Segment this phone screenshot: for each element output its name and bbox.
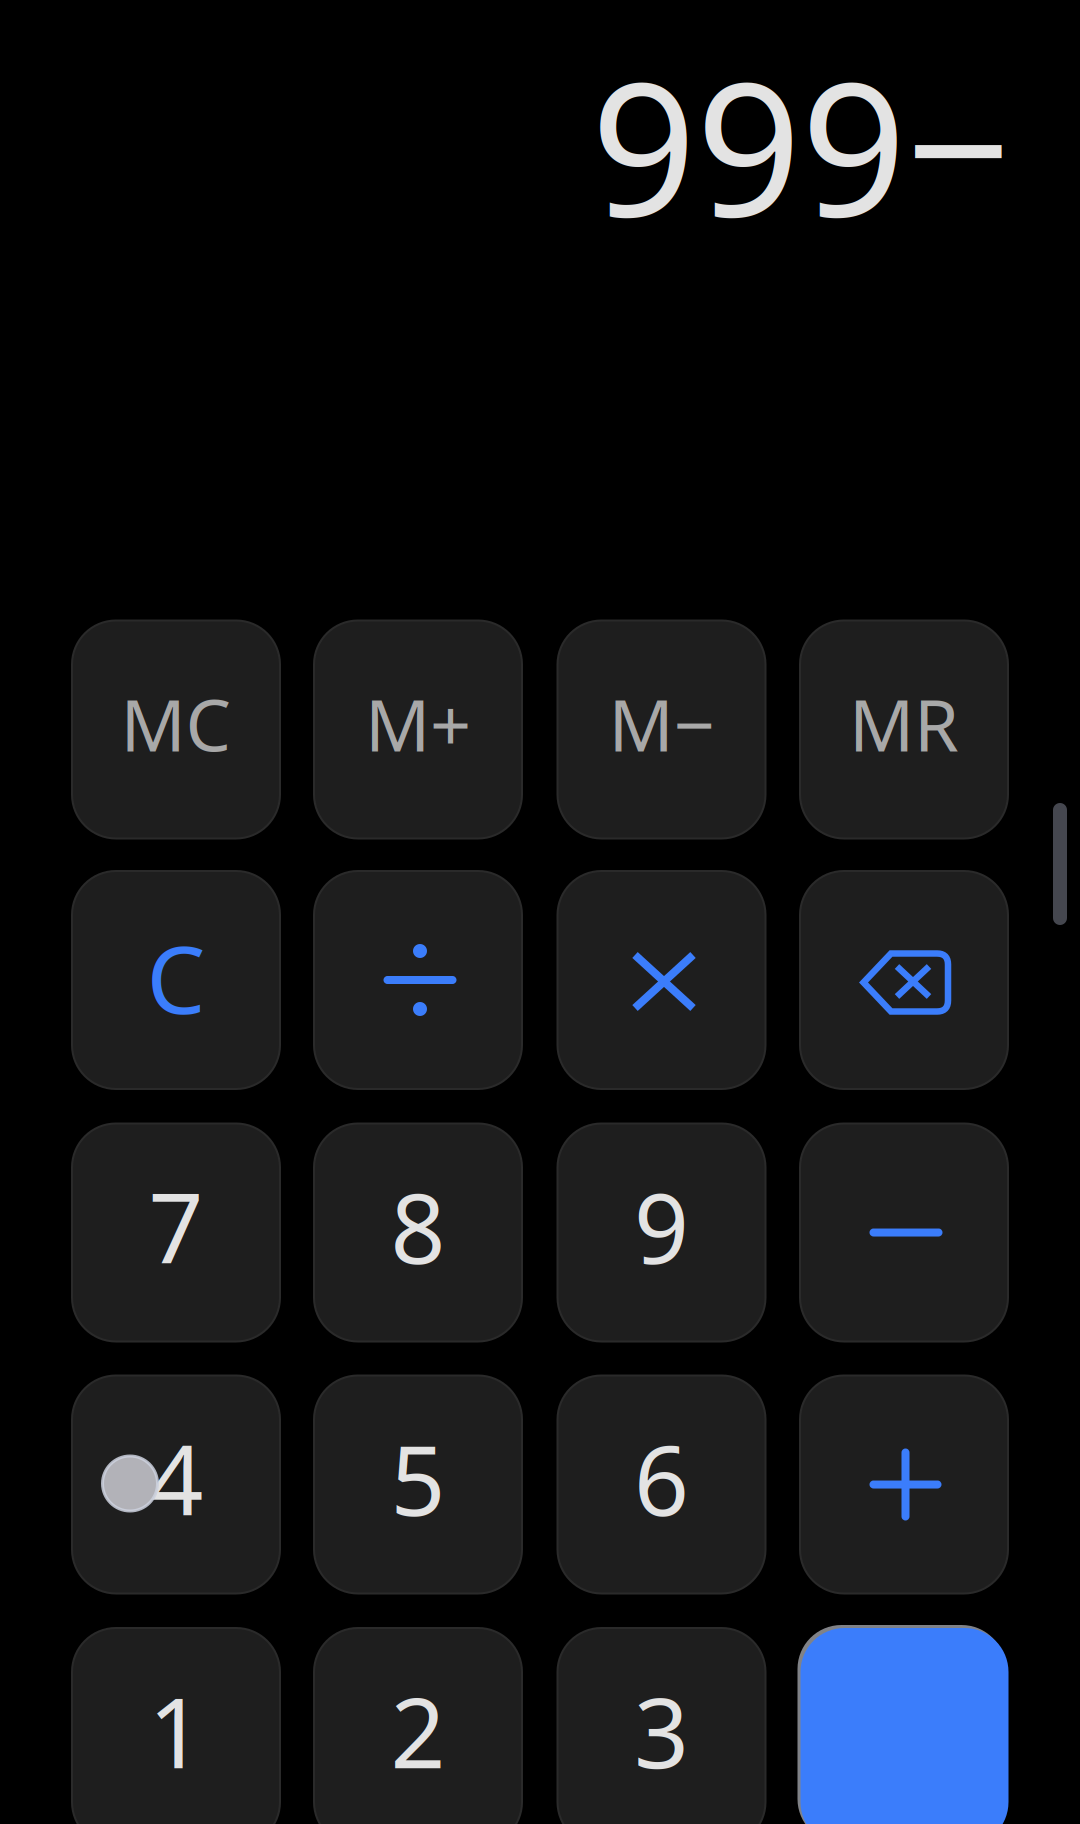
staticText: 6 bbox=[634, 1415, 689, 1542]
staticText: 2 bbox=[390, 1667, 445, 1795]
staticText: 1 bbox=[148, 1667, 203, 1795]
button[interactable]: 7 bbox=[72, 1123, 280, 1341]
staticText: 999− bbox=[591, 23, 1011, 267]
button[interactable]: MR bbox=[800, 620, 1008, 838]
staticText: C bbox=[146, 915, 205, 1039]
button[interactable]: Equals bbox=[800, 1628, 1008, 1824]
button[interactable]: Plus bbox=[800, 1375, 1008, 1593]
button[interactable]: 5 bbox=[314, 1375, 522, 1593]
button[interactable]: M− bbox=[557, 620, 765, 838]
staticText: M− bbox=[608, 676, 714, 771]
button[interactable]: M+ bbox=[314, 620, 522, 838]
staticText: M+ bbox=[365, 676, 471, 771]
button[interactable]: Minus bbox=[800, 1123, 1008, 1341]
button[interactable]: C bbox=[72, 871, 280, 1089]
staticText: 4 bbox=[148, 1415, 203, 1542]
button[interactable]: 9 bbox=[557, 1123, 765, 1341]
button[interactable]: 1 bbox=[72, 1628, 280, 1824]
staticText: 7 bbox=[148, 1163, 203, 1290]
button[interactable]: 4 bbox=[72, 1375, 280, 1593]
button[interactable]: Divide bbox=[314, 871, 522, 1089]
button[interactable]: 6 bbox=[557, 1375, 765, 1593]
staticText: MC bbox=[120, 676, 231, 771]
staticText: 8 bbox=[390, 1163, 445, 1290]
staticText: MR bbox=[849, 676, 959, 771]
staticText: 9 bbox=[634, 1163, 689, 1290]
button[interactable]: MC bbox=[72, 620, 280, 838]
button[interactable]: Delete bbox=[800, 871, 1008, 1089]
staticText: 5 bbox=[390, 1415, 445, 1542]
staticText: 3 bbox=[634, 1667, 689, 1795]
button[interactable]: 3 bbox=[557, 1628, 765, 1824]
button[interactable]: 2 bbox=[314, 1628, 522, 1824]
button[interactable]: 8 bbox=[314, 1123, 522, 1341]
button[interactable]: Multiply bbox=[557, 871, 765, 1089]
